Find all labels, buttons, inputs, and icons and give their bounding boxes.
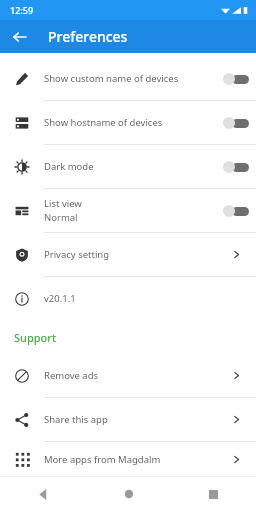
staticText: More apps from Magdalm (44, 453, 161, 466)
staticText: v20.1.1 (44, 292, 76, 305)
staticText: Show hostname of devices (44, 116, 163, 129)
button[interactable]: Share this app (0, 398, 256, 441)
button[interactable]: List view (0, 189, 256, 232)
staticText: Normal (44, 211, 78, 224)
staticText: List view (44, 197, 82, 210)
staticText: 12:59 (10, 4, 34, 16)
staticText: Preferences (48, 27, 128, 46)
button[interactable]: Show hostname of devices (0, 101, 256, 144)
button[interactable]: v20.1.1 (0, 277, 256, 320)
staticText: Share this app (44, 413, 108, 426)
staticText: Dark mode (44, 160, 94, 173)
button[interactable]: More apps from Magdalm (0, 442, 256, 476)
button[interactable]: Home (86, 476, 171, 512)
button[interactable]: Dark mode (0, 145, 256, 188)
button[interactable]: Remove ads (0, 354, 256, 397)
button[interactable]: Back (8, 26, 29, 47)
button[interactable]: Privacy setting (0, 233, 256, 276)
staticText: Privacy setting (44, 248, 110, 261)
button[interactable]: Recents (171, 476, 256, 512)
staticText: Show custom name of devices (44, 72, 179, 85)
staticText: Remove ads (44, 369, 99, 382)
staticText: Support (14, 330, 57, 345)
button[interactable]: Back (0, 476, 86, 512)
button[interactable]: Show custom name of devices (0, 57, 256, 100)
